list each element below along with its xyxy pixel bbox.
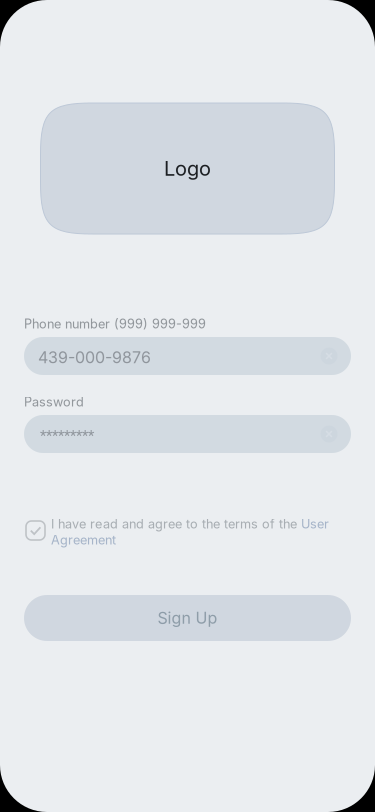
staticText: Password [24, 394, 84, 410]
staticText: Agreement [51, 532, 116, 548]
staticText: User [301, 516, 329, 532]
staticText: ********* [40, 427, 94, 445]
staticText: Sign Up [157, 608, 217, 628]
staticText: Logo [164, 156, 211, 181]
staticText: 439-000-9876 [38, 348, 151, 367]
staticText: Phone number (999) 999-999 [24, 316, 206, 332]
button[interactable]: Sign Up [24, 595, 351, 641]
button[interactable]: I have read and agree to the terms of th… [24, 516, 351, 548]
staticText: I have read and agree to the terms of th… [51, 516, 301, 532]
